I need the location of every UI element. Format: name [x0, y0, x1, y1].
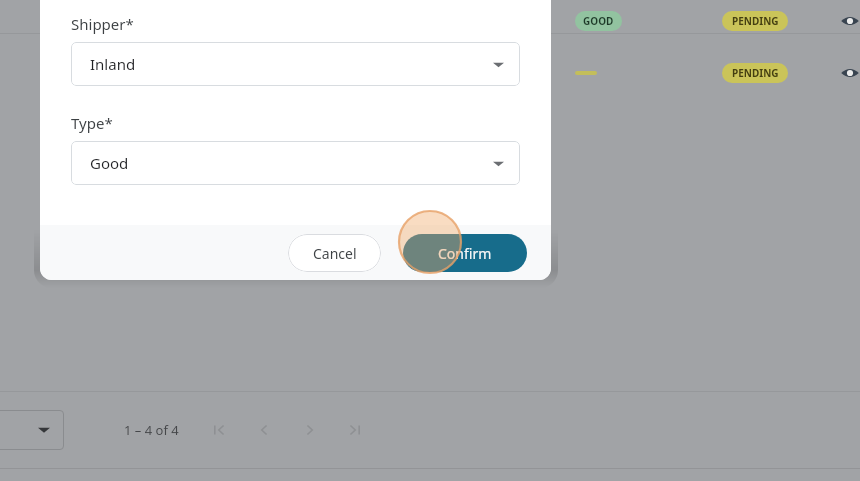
staticText: 1 – 4 of 4 — [124, 421, 179, 439]
button[interactable]: Cancel — [288, 234, 381, 272]
button[interactable]: Confirm — [403, 234, 527, 272]
staticText: PENDING — [732, 14, 779, 28]
staticText: Confirm — [438, 244, 492, 263]
staticText: Type* — [71, 113, 113, 133]
button[interactable]: View — [840, 60, 860, 86]
button[interactable]: View — [840, 8, 860, 34]
staticText: GOOD — [583, 14, 614, 28]
button[interactable]: Inland — [71, 42, 520, 86]
staticText: Shipper* — [71, 14, 134, 34]
staticText: Good — [90, 153, 129, 173]
button[interactable]: Items per page — [0, 410, 64, 450]
staticText: Inland — [90, 54, 136, 74]
staticText: Cancel — [313, 244, 357, 263]
button[interactable]: Good — [71, 141, 520, 185]
button[interactable]: last — [343, 417, 369, 443]
staticText: PENDING — [732, 66, 779, 80]
button[interactable]: first — [205, 417, 231, 443]
